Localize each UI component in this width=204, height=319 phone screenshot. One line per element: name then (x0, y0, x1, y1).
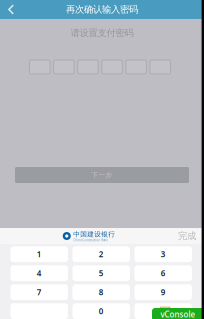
button[interactable]: 4 (10, 265, 68, 281)
button[interactable]: 2 (72, 246, 130, 262)
staticText: 3 (161, 249, 166, 259)
staticText: 2 (99, 249, 104, 259)
staticText: 请设置支付密码 (70, 27, 133, 39)
staticText: 中国建设银行 (73, 230, 115, 238)
staticText: 完成 (178, 230, 196, 242)
staticText: 下一步 (91, 171, 112, 179)
staticText: 8 (99, 287, 104, 297)
button[interactable]: 完成 (174, 229, 200, 243)
button[interactable]: 5 (72, 265, 130, 281)
button[interactable]: 3 (134, 246, 192, 262)
staticText: 再次确认输入密码 (66, 4, 138, 15)
button[interactable]: 0 (72, 303, 130, 319)
staticText: China Construction Bank (73, 238, 107, 242)
button[interactable]: Back (0, 0, 22, 19)
button[interactable]: Delete (134, 303, 192, 319)
button[interactable]: 7 (10, 284, 68, 300)
staticText: 7 (37, 287, 42, 297)
button[interactable]: vConsole (152, 308, 204, 319)
staticText: 1 (37, 249, 42, 259)
staticText: 9 (161, 287, 166, 297)
staticText: vConsole (160, 309, 195, 319)
staticText: 0 (99, 306, 104, 316)
button[interactable]: 1 (10, 246, 68, 262)
button[interactable]: 9 (134, 284, 192, 300)
button[interactable]: 8 (72, 284, 130, 300)
button[interactable]: 6 (134, 265, 192, 281)
staticText: 5 (99, 268, 104, 278)
staticText: 4 (37, 268, 42, 278)
staticText: 6 (161, 268, 166, 278)
